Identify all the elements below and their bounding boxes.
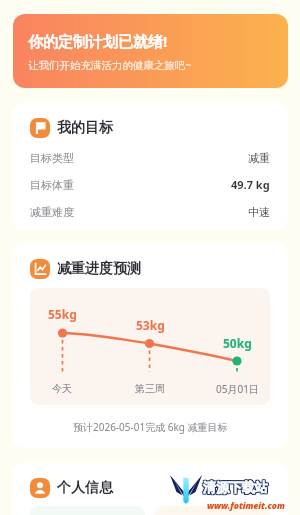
other: Profile [34,482,46,494]
staticText: 清源下载站 [202,480,267,496]
other: Goal [34,122,46,134]
staticText: 清源下载站 [202,479,267,495]
staticText: 今天 [52,382,72,395]
staticText: 50kg [223,335,252,351]
staticText: 清源下载站 [203,478,268,494]
staticText: 清源下载站 [202,478,267,494]
button[interactable]: Progress chart [12,243,288,448]
staticText: 清源下载站 [204,479,269,495]
staticText: 49.7 kg [231,177,270,192]
staticText: 目标类型 [30,151,74,165]
staticText: 你的定制计划已就绪! [28,31,168,51]
staticText: 让我们开始充满活力的健康之旅吧~ [28,58,192,72]
other: Progress chart [34,263,46,275]
button[interactable]: 你的定制计划已就绪! [13,14,288,88]
staticText: 05月01日 [216,382,259,396]
staticText: 目标体重 [30,178,74,192]
staticText: 53kg [136,317,165,333]
staticText: 第三周 [135,382,165,395]
staticText: 清源下载站 [204,480,269,496]
staticText: 我的目标 [57,119,113,137]
staticText: 减重难度 [30,205,74,219]
button[interactable]: Profile [12,463,288,515]
staticText: 清源下载站 [203,479,268,495]
staticText: 清源下载站 [203,480,268,496]
staticText: 清源下载站 [204,478,269,494]
staticText: www.fotimeit.com [207,500,285,512]
staticText: 中速 [248,205,270,219]
staticText: 个人信息 [57,479,113,497]
button[interactable]: Goal [12,103,288,229]
staticText: 55kg [48,306,77,322]
staticText: 减重 [248,151,270,165]
staticText: 减重进度预测 [57,260,141,278]
staticText: 预计2026-05-01完成 6kg 减重目标 [73,420,228,434]
